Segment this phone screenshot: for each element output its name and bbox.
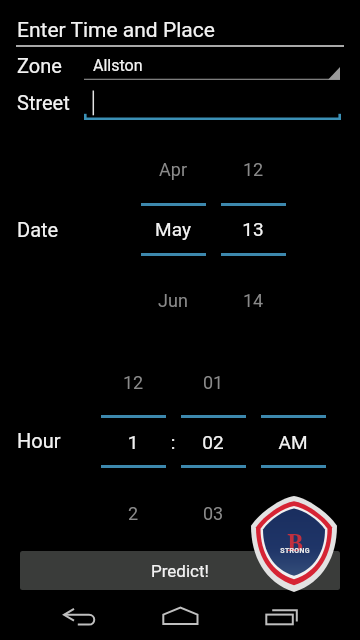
staticText: PM bbox=[233, 503, 353, 524]
staticText: Hour bbox=[17, 429, 61, 452]
staticText: May bbox=[113, 218, 233, 240]
button[interactable]: Recent apps bbox=[247, 599, 319, 640]
staticText: Apr bbox=[113, 159, 233, 180]
staticText: Street bbox=[17, 91, 70, 114]
staticText: 13 bbox=[193, 218, 313, 240]
staticText: B bbox=[252, 525, 338, 558]
staticText: 12 bbox=[193, 159, 313, 180]
staticText: AM bbox=[233, 431, 353, 453]
staticText: 12 bbox=[73, 372, 193, 393]
staticText: 03 bbox=[153, 503, 273, 524]
staticText: Jun bbox=[113, 290, 233, 311]
button[interactable]: Back bbox=[44, 599, 116, 640]
staticText: : bbox=[113, 431, 233, 453]
staticText: Enter Time and Place bbox=[17, 18, 215, 43]
staticText: Allston bbox=[93, 56, 143, 75]
button[interactable]: Predict! bbox=[20, 551, 340, 590]
staticText: Predict! bbox=[151, 561, 209, 581]
staticText: 01 bbox=[153, 372, 273, 393]
staticText: Zone bbox=[17, 54, 62, 77]
staticText: 1 bbox=[73, 431, 193, 453]
button[interactable]: Allston bbox=[84, 55, 340, 80]
staticText: STRONG bbox=[252, 547, 338, 555]
staticText: 14 bbox=[193, 290, 313, 311]
button[interactable] bbox=[84, 89, 341, 120]
staticText: 2 bbox=[73, 503, 193, 524]
staticText: Date bbox=[17, 218, 59, 241]
button[interactable]: Home bbox=[145, 599, 217, 640]
staticText: 02 bbox=[153, 431, 273, 453]
